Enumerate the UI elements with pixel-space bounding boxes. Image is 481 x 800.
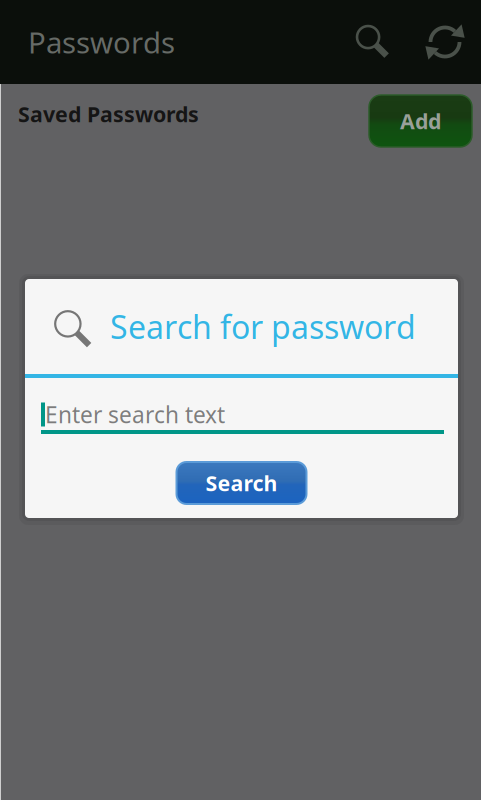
button[interactable]: Refresh — [409, 0, 481, 84]
staticText: Search — [205, 469, 277, 497]
button[interactable]: Search — [337, 0, 409, 84]
staticText: Saved Passwords — [18, 100, 199, 128]
staticText: Add — [400, 107, 441, 135]
button[interactable]: Add — [369, 88, 472, 140]
button[interactable]: Search — [176, 462, 306, 504]
staticText: Search for password — [110, 305, 416, 348]
staticText: Passwords — [28, 22, 175, 61]
staticText: Enter search text — [45, 399, 225, 429]
